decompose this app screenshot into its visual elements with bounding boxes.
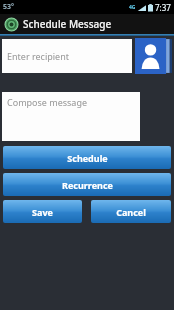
button[interactable]: Recurrence (3, 173, 171, 196)
staticText: 4G (129, 4, 136, 11)
staticText: Cancel (116, 206, 146, 218)
button[interactable]: Pick contact (135, 38, 172, 74)
staticText: Save (32, 206, 53, 218)
button[interactable]: Cancel (91, 200, 171, 223)
staticText: 53° (3, 2, 14, 12)
button[interactable]: Schedule (3, 146, 171, 169)
staticText: 7:37 (155, 2, 171, 13)
button[interactable]: Save (3, 200, 82, 223)
staticText: Enter recipient (7, 50, 69, 62)
staticText: Schedule (67, 152, 108, 164)
button[interactable]: Compose message (2, 92, 140, 141)
staticText: Recurrence (62, 179, 113, 191)
staticText: Compose message (7, 96, 88, 108)
staticText: Schedule Message (23, 17, 112, 31)
button[interactable]: Enter recipient (2, 39, 132, 73)
